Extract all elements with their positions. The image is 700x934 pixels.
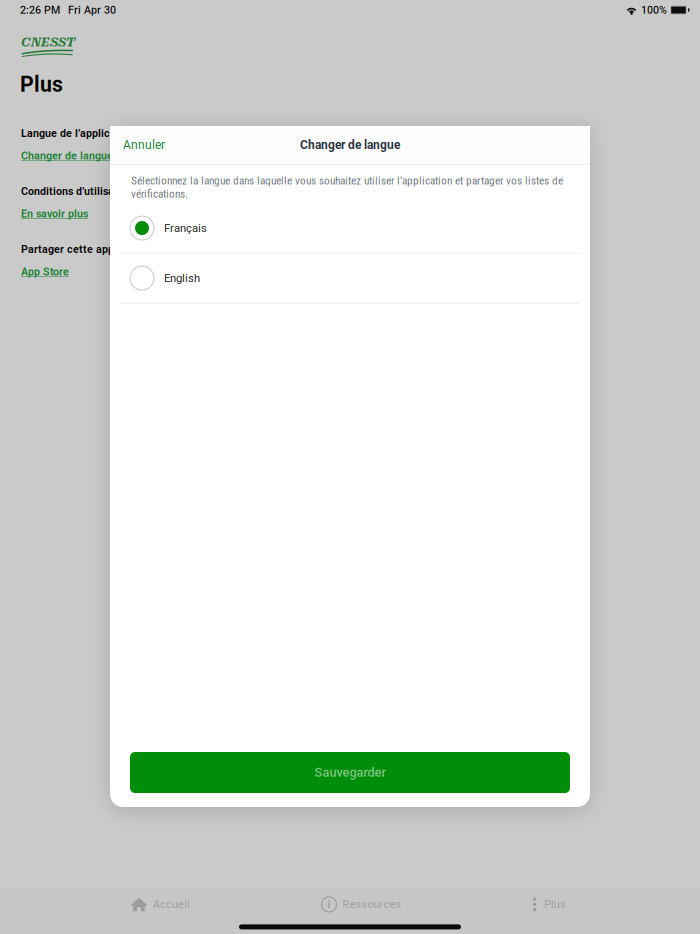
- button[interactable]: App Store: [0, 265, 69, 278]
- button[interactable]: Français: [110, 204, 590, 254]
- staticText: Sauvegarder: [314, 765, 385, 780]
- staticText: App Store: [21, 265, 69, 278]
- button[interactable]: En savoir plus: [0, 207, 88, 220]
- staticText: English: [164, 271, 200, 285]
- button[interactable]: Ressources: [311, 892, 411, 917]
- staticText: Annuler: [123, 138, 165, 152]
- staticText: Conditions d’utilisation: [21, 185, 133, 197]
- staticText: Ressources: [342, 898, 401, 911]
- button[interactable]: Sauvegarder: [130, 752, 570, 793]
- staticText: Changer de langue: [21, 149, 113, 162]
- staticText: Sélectionnez la langue dans laquelle vou…: [131, 174, 563, 201]
- staticText: 2:26 PM: [20, 4, 60, 16]
- staticText: Fri Apr 30: [68, 4, 116, 16]
- staticText: Français: [164, 221, 207, 235]
- staticText: Changer de langue: [300, 138, 400, 152]
- staticText: Accueil: [153, 898, 190, 911]
- staticText: CNESST: [21, 35, 75, 49]
- staticText: Plus: [544, 898, 566, 911]
- staticText: Plus: [20, 72, 63, 97]
- button[interactable]: English: [110, 254, 590, 304]
- staticText: En savoir plus: [21, 207, 88, 220]
- staticText: Langue de l’application: [21, 127, 135, 139]
- button[interactable]: Annuler: [112, 128, 176, 162]
- staticText: 100%: [641, 4, 667, 16]
- staticText: Partager cette app: [21, 243, 114, 255]
- button[interactable]: Accueil: [121, 892, 200, 917]
- button[interactable]: Plus: [523, 892, 576, 917]
- button[interactable]: Changer de langue: [0, 149, 113, 162]
